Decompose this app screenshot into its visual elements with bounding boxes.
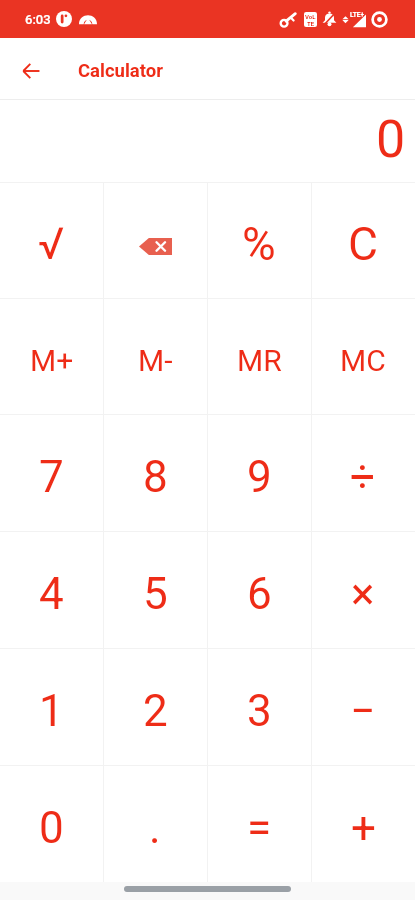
- staticText: M+: [30, 343, 74, 378]
- button[interactable]: 9: [207, 414, 311, 531]
- button[interactable]: −: [311, 648, 415, 765]
- staticText: 0: [39, 802, 64, 854]
- staticText: Calculator: [78, 60, 163, 82]
- button[interactable]: MC: [311, 298, 415, 414]
- staticText: 9: [247, 451, 272, 503]
- staticText: ×: [351, 568, 375, 620]
- button[interactable]: 2: [103, 648, 207, 765]
- staticText: 2: [143, 685, 168, 737]
- button[interactable]: 5: [103, 531, 207, 648]
- staticText: %: [242, 217, 276, 271]
- staticText: 8: [143, 451, 168, 503]
- button[interactable]: 7: [0, 414, 103, 531]
- staticText: ÷: [350, 451, 376, 503]
- button[interactable]: %: [207, 182, 311, 298]
- button[interactable]: M-: [103, 298, 207, 414]
- staticText: =: [247, 802, 272, 854]
- staticText: 1: [39, 685, 64, 737]
- button[interactable]: ÷: [311, 414, 415, 531]
- button[interactable]: 1: [0, 648, 103, 765]
- button[interactable]: ×: [311, 531, 415, 648]
- staticText: C: [348, 217, 378, 271]
- button[interactable]: M+: [0, 298, 103, 414]
- button[interactable]: =: [207, 765, 311, 882]
- button[interactable]: 3: [207, 648, 311, 765]
- staticText: M-: [138, 343, 173, 378]
- staticText: MC: [340, 343, 386, 378]
- button[interactable]: 8: [103, 414, 207, 531]
- staticText: +: [351, 802, 376, 854]
- staticText: TE: [307, 20, 315, 27]
- button[interactable]: .: [103, 765, 207, 882]
- staticText: .: [149, 802, 161, 854]
- staticText: LTE+: [350, 11, 365, 19]
- staticText: −: [350, 685, 376, 737]
- button[interactable]: Back: [0, 38, 62, 100]
- button[interactable]: Backspace: [103, 182, 207, 298]
- staticText: 3: [247, 685, 272, 737]
- button[interactable]: MR: [207, 298, 311, 414]
- button[interactable]: 4: [0, 531, 103, 648]
- button[interactable]: 6: [207, 531, 311, 648]
- button[interactable]: 0: [0, 765, 103, 882]
- staticText: 6: [247, 568, 272, 620]
- staticText: VoL: [305, 13, 316, 20]
- button[interactable]: +: [311, 765, 415, 882]
- button[interactable]: C: [311, 182, 415, 298]
- staticText: √: [38, 218, 65, 270]
- button[interactable]: √: [0, 182, 103, 298]
- staticText: MR: [237, 343, 282, 378]
- staticText: 5: [143, 568, 168, 620]
- staticText: 4: [39, 568, 64, 620]
- staticText: 6:03: [25, 12, 51, 27]
- staticText: 7: [39, 451, 64, 503]
- staticText: 0: [376, 109, 406, 170]
